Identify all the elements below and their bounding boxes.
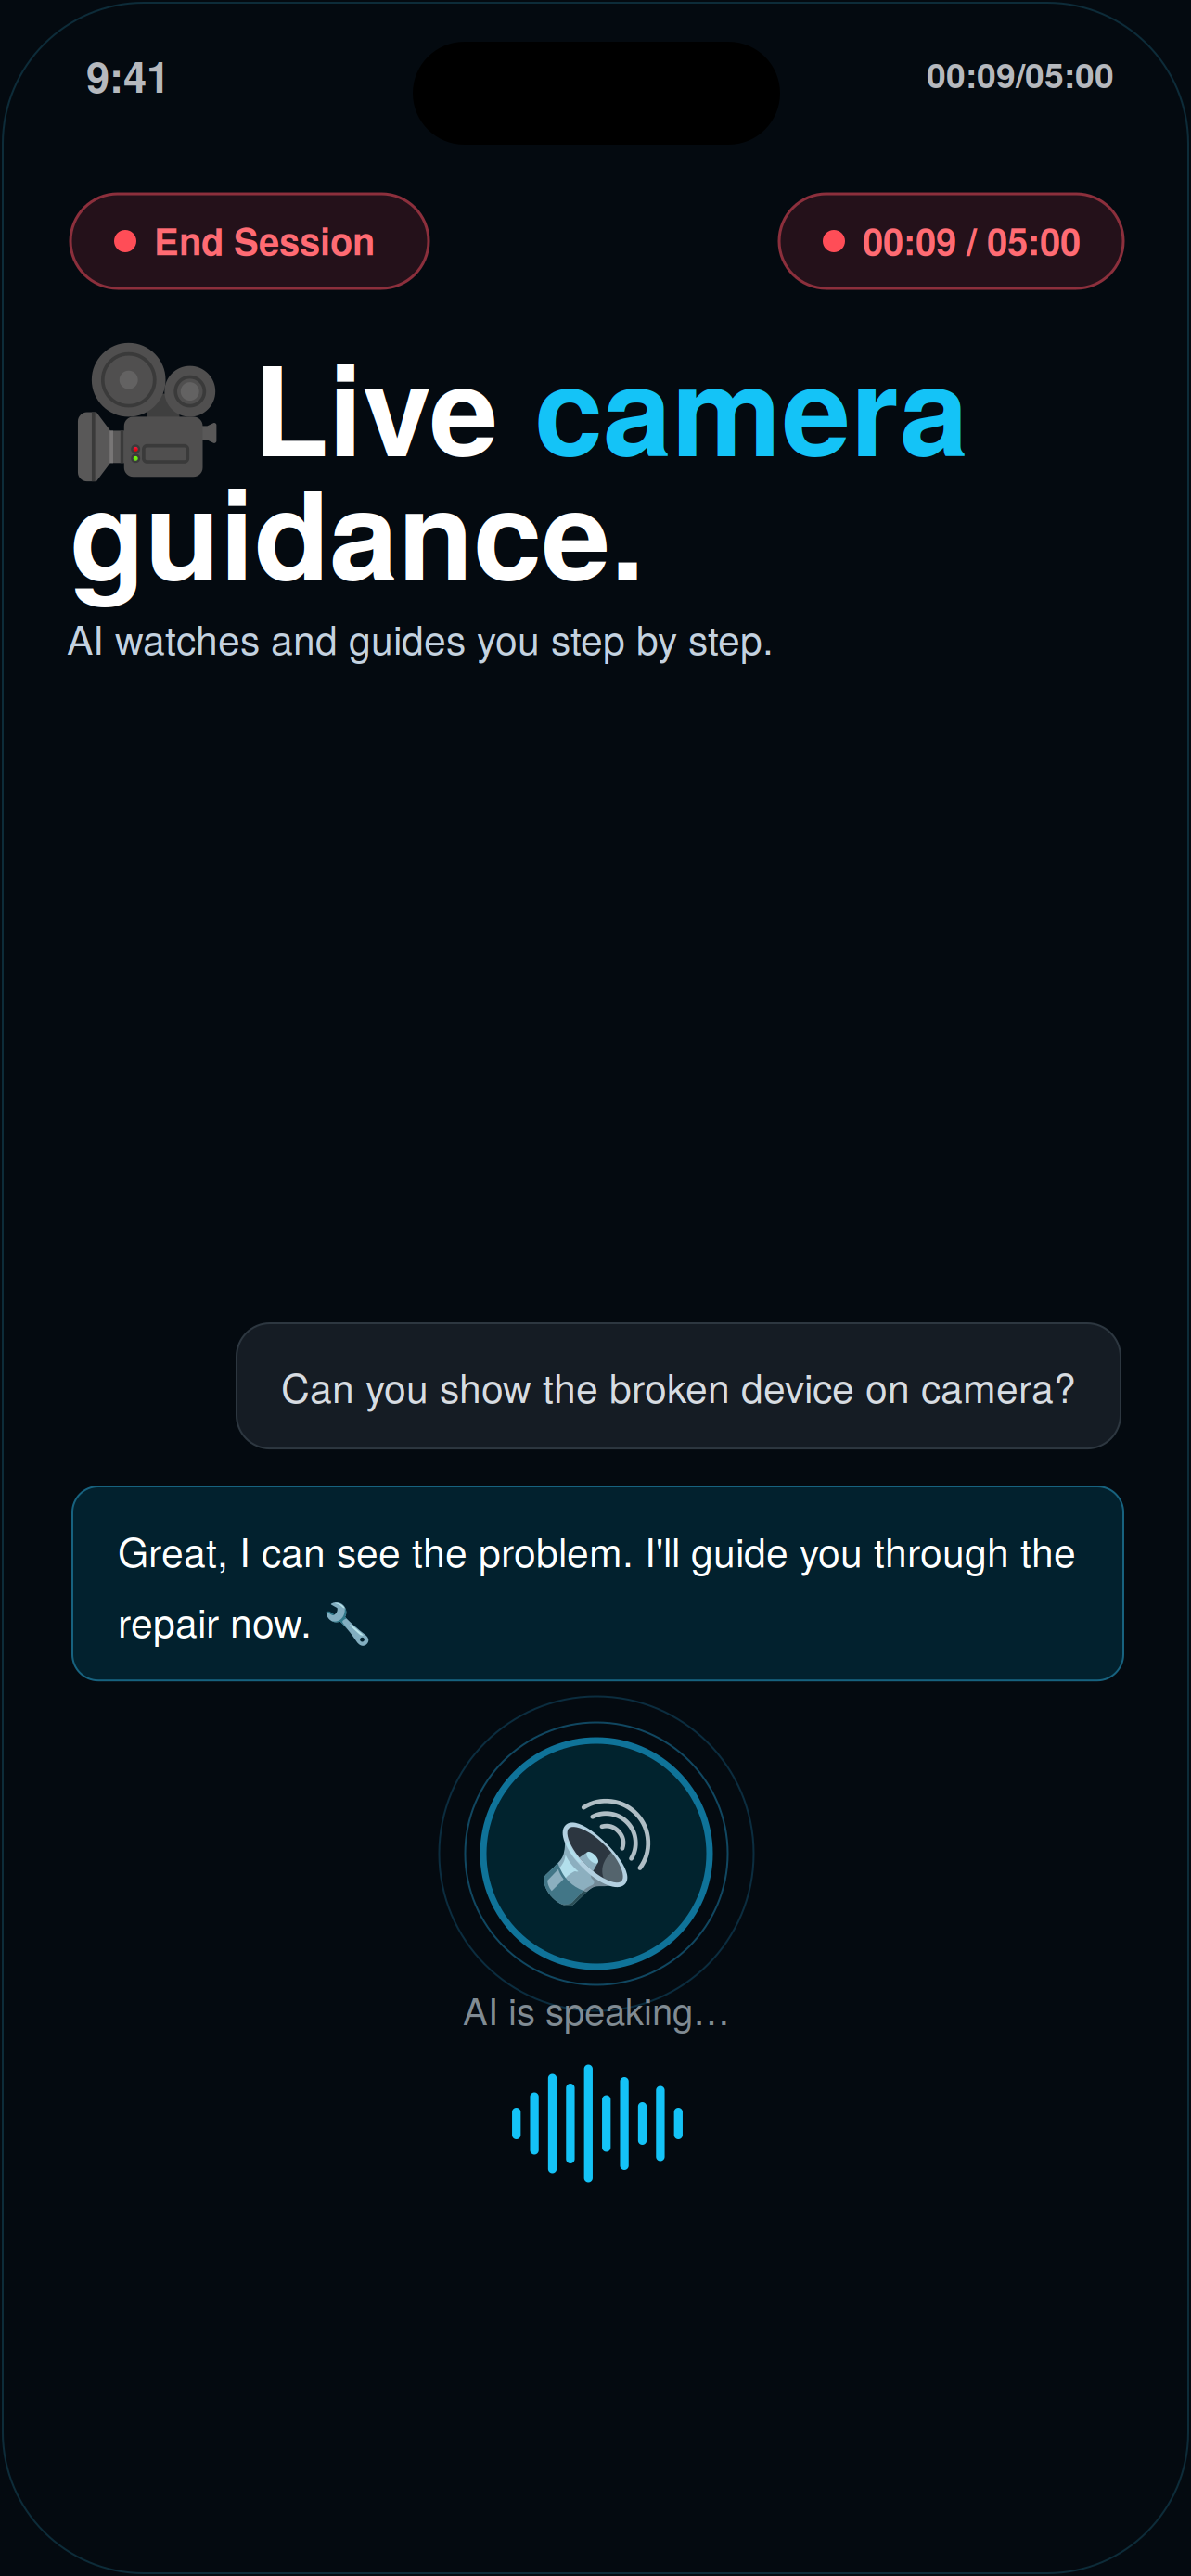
staticText: AI watches and guides you step by step.: [67, 609, 774, 666]
staticText: 🎥: [69, 338, 225, 486]
staticText: Great, I can see the problem. I'll guide…: [118, 1522, 1076, 1649]
staticText: 🔊: [537, 1795, 656, 1908]
staticText: 9:41: [86, 45, 170, 106]
staticText: Can you show the broken device on camera…: [281, 1358, 1076, 1414]
button[interactable]: End Session: [70, 194, 429, 288]
staticText: camera: [534, 317, 968, 494]
button[interactable]: 00:09 / 05:00: [779, 194, 1123, 288]
staticText: guidance.: [70, 441, 645, 618]
staticText: Live: [253, 317, 498, 494]
staticText: AI is speaking…: [463, 1983, 730, 2036]
staticText: 00:09/05:00: [927, 49, 1114, 99]
staticText: 00:09 / 05:00: [863, 214, 1081, 267]
staticText: End Session: [154, 214, 375, 267]
